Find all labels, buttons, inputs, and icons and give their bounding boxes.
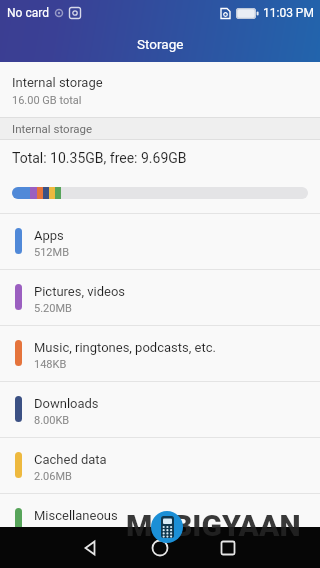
staticText: 8.00KB: [34, 414, 70, 427]
staticText: 16.00 GB total: [12, 94, 82, 107]
staticText: 5.20MB: [34, 302, 72, 315]
staticText: 512MB: [34, 246, 70, 259]
staticText: Internal storage: [12, 122, 93, 135]
staticText: MOBIGYAAN: [126, 508, 301, 543]
staticText: Music, ringtones, podcasts, etc.: [34, 340, 216, 355]
staticText: Miscellaneous: [34, 508, 118, 523]
staticText: Internal storage: [12, 75, 103, 90]
staticText: Apps: [34, 228, 64, 243]
button[interactable]: [131, 527, 189, 568]
staticText: Pictures, videos: [34, 284, 126, 299]
staticText: Storage: [137, 36, 184, 52]
button[interactable]: Pictures, videos: [0, 269, 320, 325]
button[interactable]: Downloads: [0, 381, 320, 437]
staticText: Total: 10.35GB, free: 9.69GB: [12, 150, 187, 166]
button[interactable]: [199, 527, 257, 568]
button[interactable]: Music, ringtones, podcasts, etc.: [0, 325, 320, 381]
button[interactable]: Cached data: [0, 437, 320, 493]
button[interactable]: Apps: [0, 213, 320, 269]
staticText: No card: [7, 6, 49, 20]
staticText: 148KB: [34, 358, 67, 371]
button[interactable]: Miscellaneous: [0, 493, 320, 549]
button[interactable]: Internal storage: [0, 62, 320, 117]
staticText: Cached data: [34, 452, 107, 467]
staticText: 11:03 PM: [263, 6, 314, 20]
staticText: 57.00MB: [34, 526, 79, 539]
button[interactable]: [61, 527, 119, 568]
staticText: 2.06MB: [34, 470, 72, 483]
staticText: Downloads: [34, 396, 99, 411]
